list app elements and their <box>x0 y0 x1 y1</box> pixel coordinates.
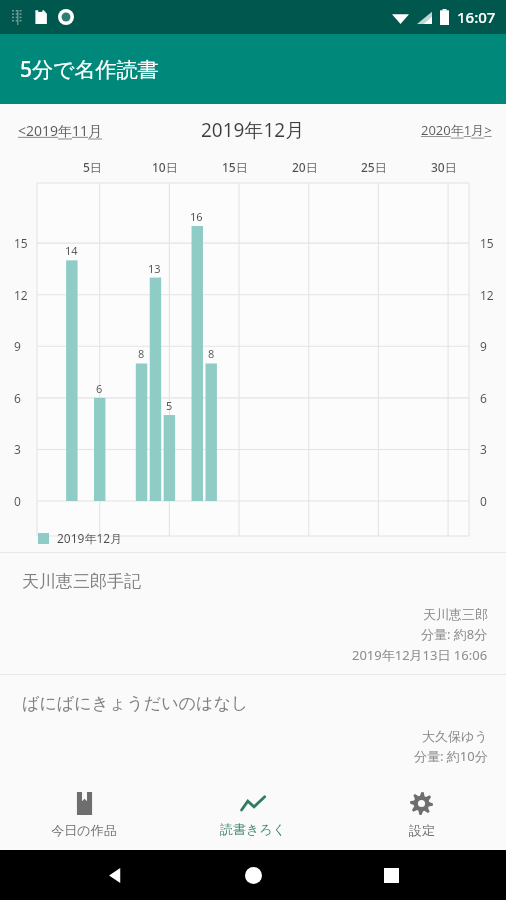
staticText: 15日 <box>222 159 248 175</box>
staticText: 3 <box>14 441 21 457</box>
staticText: 2019年12月13日 16:06 <box>352 646 488 664</box>
staticText: 分量: 約8分 <box>421 625 488 643</box>
staticText: 8 <box>138 346 145 361</box>
staticText: 13 <box>148 261 161 276</box>
staticText: 今日の作品 <box>51 822 117 838</box>
staticText: 12 <box>480 287 494 303</box>
other: 今日の作品 <box>74 792 95 815</box>
staticText: 14 <box>65 243 78 258</box>
button[interactable]: 今日の作品 <box>0 780 168 850</box>
other: 設定 <box>410 792 433 815</box>
staticText: 5 <box>166 398 173 413</box>
staticText: 12 <box>14 287 28 303</box>
staticText: 読書きろく <box>220 821 286 837</box>
button[interactable]: 天川恵三郎手記 <box>0 553 506 674</box>
staticText: 0 <box>14 493 21 509</box>
staticText: 6 <box>14 390 21 406</box>
staticText: 16:07 <box>457 7 496 27</box>
staticText: 5日 <box>83 159 102 175</box>
staticText: 3 <box>480 441 487 457</box>
button[interactable]: Home <box>230 852 276 898</box>
staticText: ばにばにきょうだいのはなし <box>22 693 249 714</box>
button[interactable]: <2019年11月 <box>0 115 109 146</box>
staticText: 設定 <box>409 822 435 838</box>
staticText: 8 <box>208 346 215 361</box>
staticText: 大久保ゆう <box>422 728 488 744</box>
button[interactable]: 読書きろく <box>168 780 337 850</box>
button[interactable]: ばにばにきょうだいのはなし <box>0 675 506 775</box>
staticText: 2019年12月 <box>57 530 123 546</box>
staticText: 天川恵三郎手記 <box>22 571 141 592</box>
staticText: 15 <box>14 235 28 251</box>
button[interactable]: 設定 <box>337 780 506 850</box>
staticText: 15 <box>480 235 494 251</box>
staticText: 9 <box>480 338 487 354</box>
staticText: 16 <box>190 209 203 224</box>
staticText: 10日 <box>152 159 178 175</box>
staticText: 30日 <box>431 159 457 175</box>
other: 読書きろく <box>240 794 266 814</box>
staticText: 2019年12月 <box>201 117 305 143</box>
button[interactable]: 2020年1月> <box>415 115 506 145</box>
staticText: 6 <box>480 390 487 406</box>
staticText: 9 <box>14 338 21 354</box>
button[interactable]: Recents <box>368 852 414 898</box>
staticText: 25日 <box>361 159 387 175</box>
staticText: 天川恵三郎 <box>423 606 488 622</box>
staticText: 分量: 約10分 <box>414 747 488 765</box>
staticText: 0 <box>480 493 487 509</box>
staticText: 5分で名作読書 <box>20 55 159 84</box>
button[interactable]: Back <box>92 852 138 898</box>
staticText: 20日 <box>292 159 318 175</box>
staticText: 6 <box>96 381 103 396</box>
